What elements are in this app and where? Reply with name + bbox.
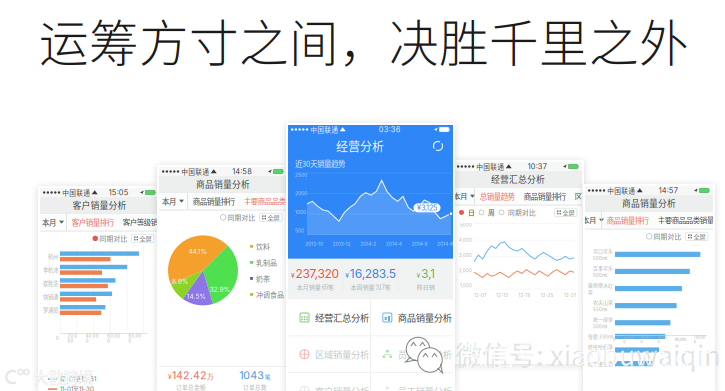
staticText: 40,000	[86, 333, 99, 343]
staticText: 商品销量排行	[607, 215, 649, 226]
button[interactable]: 客户销量排行	[70, 214, 116, 231]
button[interactable]: 客户销量分析	[288, 373, 370, 391]
staticText: 12-13	[496, 293, 508, 298]
staticText: 百事可乐 500ml	[593, 264, 613, 278]
staticText: ¥	[291, 271, 295, 280]
button[interactable]: 区域销	[573, 188, 598, 205]
staticText: 本月	[582, 215, 596, 226]
staticText: 12-01至12-31	[60, 375, 96, 383]
staticText: 本月销量 65笔	[297, 282, 334, 291]
staticText: 2014-8	[437, 241, 453, 247]
staticText: 日	[468, 208, 475, 217]
staticText: 快销通	[43, 293, 58, 300]
button[interactable]: 区域销量分析	[288, 336, 370, 372]
staticText: 本月	[42, 217, 56, 228]
staticText: 11-01至11-30	[60, 385, 94, 391]
button[interactable]: 经营汇总分析	[288, 299, 370, 335]
staticText: 笔	[265, 372, 271, 381]
staticText: 昨日销	[417, 282, 435, 291]
staticText: 本月	[453, 191, 467, 202]
staticText: 80,000	[129, 333, 142, 343]
staticText: 全屏	[693, 232, 705, 241]
staticText: 1043	[239, 369, 264, 382]
staticText: 12-25	[541, 293, 554, 298]
staticText: 大數跨境	[33, 366, 93, 388]
staticText: 康师傅冰红茶	[588, 282, 613, 295]
staticText: 12-31	[564, 293, 576, 298]
staticText: 同期对比	[227, 213, 255, 222]
staticText: 冲调食品	[256, 289, 284, 299]
staticText: 60,000	[107, 333, 120, 343]
staticText: 全屏	[139, 234, 151, 243]
staticText: 同期对比	[508, 208, 536, 217]
staticText: 中国联通	[310, 125, 338, 134]
staticText: 12-07	[474, 293, 486, 298]
staticText: 本周销量 317笔	[350, 282, 390, 291]
staticText: 客户销量排行	[72, 217, 114, 228]
button[interactable]: 客户等级销量分布	[121, 214, 181, 231]
staticText: 14:57	[659, 186, 678, 195]
staticText: 500	[295, 228, 304, 234]
staticText: 商品销量排行	[524, 191, 566, 202]
staticText: 订单总数	[243, 383, 267, 391]
button[interactable]: 总销量趋势	[478, 188, 517, 205]
staticText: 12-19	[518, 293, 530, 298]
staticText: 区域销量分析	[315, 347, 369, 361]
staticText: 饮料	[256, 241, 270, 251]
staticText: 微信号: xiaobuwaiqin	[463, 335, 713, 373]
button[interactable]: 本月	[40, 214, 66, 231]
staticText: 4,000	[459, 238, 472, 243]
button[interactable]: 本月	[585, 212, 601, 229]
staticText: ¥	[345, 271, 349, 280]
staticText: 同期对比	[653, 232, 681, 241]
staticText: 可口可乐 500ml	[593, 247, 613, 261]
button[interactable]: 商品销量排行	[191, 193, 237, 210]
button[interactable]: 员工销量分析	[371, 373, 453, 391]
staticText: 32.9%	[209, 285, 230, 293]
staticText: 80,000	[675, 337, 686, 342]
button[interactable]: 主要商品品类销量占比	[656, 212, 725, 229]
button[interactable]: 商品销量排行	[522, 188, 568, 205]
button[interactable]: 员工销量分析	[371, 336, 453, 372]
staticText: 100,000	[694, 335, 705, 344]
staticText: 8.9%	[172, 277, 188, 285]
staticText: 10:37	[528, 162, 547, 171]
staticText: 客户等级销量分布	[123, 217, 179, 228]
staticText: 2,000	[459, 268, 472, 273]
staticText: 1,000	[460, 283, 472, 288]
button[interactable]: 本月	[159, 193, 187, 210]
button[interactable]: 本月	[454, 188, 474, 205]
staticText: 娃哈哈纯净水	[588, 343, 613, 357]
staticText: 经营分析	[336, 137, 384, 155]
button[interactable]: 商品销量排行	[605, 212, 651, 229]
staticText: 周	[488, 208, 495, 217]
staticText: 本月	[162, 196, 176, 207]
staticText: 2014-6	[411, 241, 427, 247]
staticText: 李杭沛	[43, 266, 58, 274]
staticText: 1000	[295, 209, 306, 215]
staticText: 中国联通	[62, 188, 90, 197]
staticText: 万	[207, 372, 214, 381]
staticText: 商品销量分析	[196, 178, 250, 190]
staticText: 商品销量分析	[398, 311, 452, 324]
staticText: 经营汇总分析	[491, 173, 545, 185]
staticText: 20,000	[623, 335, 632, 344]
staticText: 员工销量分析	[398, 347, 452, 361]
staticText: 主要商品品类销量占比	[244, 196, 314, 207]
staticText: 03:36	[379, 125, 401, 134]
staticText: 2014-4	[386, 241, 402, 247]
staticText: 0	[613, 337, 615, 342]
staticText: 中国联通	[607, 186, 635, 195]
staticText: 统一绿茶 500ml	[593, 316, 613, 330]
staticText: 崔胜浩	[43, 279, 58, 287]
staticText: 142.42	[172, 369, 207, 382]
staticText: 2014-2	[360, 241, 376, 247]
button[interactable]: 主要商品品类销量占比	[242, 193, 316, 210]
staticText: 区域销	[575, 191, 596, 202]
staticText: 14.5%	[186, 292, 205, 300]
staticText: 雪碧 330ml	[588, 333, 613, 340]
staticText: 员工销量分析	[398, 384, 452, 391]
staticText: 2013-12	[333, 241, 351, 247]
staticText: 主要商品品类销量占比	[658, 215, 725, 226]
button[interactable]: 商品销量分析	[371, 299, 453, 335]
